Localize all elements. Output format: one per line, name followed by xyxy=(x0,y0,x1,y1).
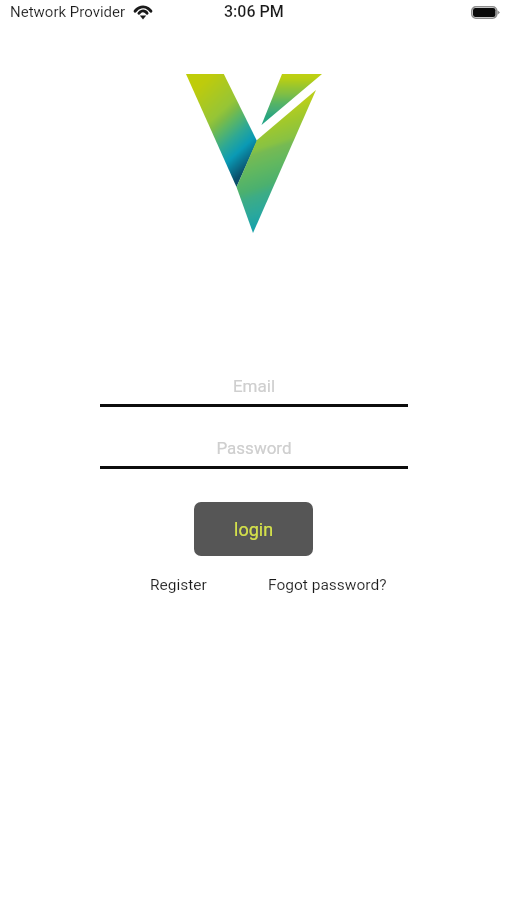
staticText: Network Provider xyxy=(10,3,126,21)
staticText: Register xyxy=(150,576,207,594)
other: Battery full xyxy=(471,6,500,19)
staticText: Password xyxy=(100,438,408,458)
button[interactable]: Register xyxy=(144,573,213,597)
other: Wi-Fi signal xyxy=(133,4,153,20)
button[interactable]: login xyxy=(194,502,313,556)
staticText: 3:06 PM xyxy=(224,2,284,21)
staticText: Fogot password? xyxy=(268,576,387,594)
button[interactable]: Email xyxy=(100,372,408,409)
button[interactable]: Fogot password? xyxy=(262,573,393,597)
staticText: login xyxy=(234,519,274,540)
staticText: Email xyxy=(100,376,408,396)
button[interactable]: Password xyxy=(100,434,408,471)
